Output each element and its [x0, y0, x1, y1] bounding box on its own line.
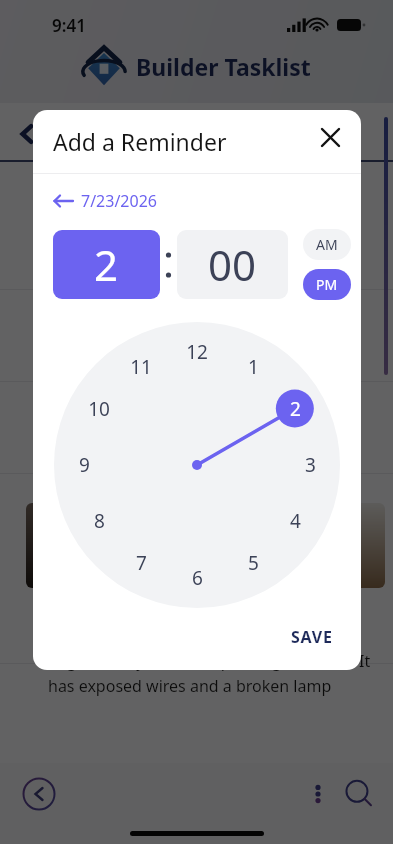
staticText: 8	[94, 508, 105, 534]
button[interactable]: 3	[294, 452, 326, 478]
button[interactable]: 1	[237, 354, 269, 380]
button[interactable]: 7/23/2026	[53, 190, 157, 212]
button[interactable]: Back	[22, 777, 56, 811]
button[interactable]: 2	[53, 230, 160, 299]
staticText: 3	[305, 452, 316, 478]
staticText: 5	[248, 550, 259, 576]
button[interactable]: 7	[125, 550, 157, 576]
button[interactable]: 4	[279, 508, 311, 534]
staticText: 11	[130, 354, 152, 380]
staticText: 7/23/2026	[81, 190, 157, 212]
button[interactable]: SAVE	[279, 618, 345, 656]
staticText: Builder Tasklist	[136, 51, 311, 82]
staticText: 9	[79, 452, 90, 478]
button[interactable]: 2	[279, 396, 311, 422]
staticText: Add a Reminder	[53, 126, 227, 157]
staticText: 6	[192, 565, 203, 591]
button[interactable]: More options	[303, 779, 333, 809]
button[interactable]: 8	[83, 508, 115, 534]
staticText: PM	[316, 275, 338, 294]
staticText: 2	[290, 396, 301, 422]
button[interactable]: 11	[125, 354, 157, 380]
staticText: 9:41	[52, 14, 86, 37]
button[interactable]: 6	[181, 565, 213, 591]
staticText: 00	[208, 236, 257, 293]
button[interactable]: Search	[342, 777, 376, 811]
staticText: 7	[136, 550, 147, 576]
staticText: SAVE	[291, 626, 333, 648]
button[interactable]: Close	[315, 122, 345, 152]
staticText: 2	[94, 236, 119, 293]
button[interactable]: AM	[303, 229, 351, 260]
staticText: 1	[248, 354, 259, 380]
button[interactable]: 5	[237, 550, 269, 576]
button[interactable]: 00	[177, 230, 288, 299]
button[interactable]: 12	[181, 339, 213, 365]
staticText: AM	[316, 235, 338, 254]
button[interactable]: PM	[303, 269, 351, 300]
staticText: 4	[290, 508, 301, 534]
button[interactable]: Back	[14, 121, 40, 147]
staticText: 12	[186, 339, 208, 365]
button[interactable]: 9	[68, 452, 100, 478]
button[interactable]: 10	[83, 396, 115, 422]
staticText: I don’t know what happened here, but Mig…	[48, 625, 378, 696]
staticText: 10	[88, 396, 110, 422]
